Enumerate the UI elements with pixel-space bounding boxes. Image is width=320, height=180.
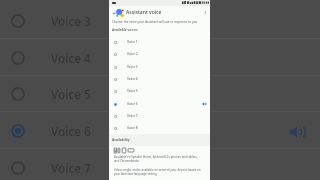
button[interactable]: Voice 7 bbox=[109, 110, 210, 122]
staticText: Voice 4 bbox=[127, 77, 138, 81]
staticText: Voice 1 bbox=[127, 40, 138, 44]
staticText: Voice 2 bbox=[127, 52, 138, 56]
staticText: Voice 6 bbox=[127, 102, 138, 106]
button[interactable]: Voice 7 bbox=[0, 149, 320, 180]
button[interactable]: Voice 8 bbox=[109, 122, 210, 134]
button[interactable]: Voice 4 bbox=[0, 39, 320, 76]
button[interactable]: Voice 5 bbox=[0, 75, 320, 112]
button[interactable]: More options bbox=[203, 10, 208, 15]
button[interactable]: Voice 1 bbox=[109, 36, 210, 48]
staticText: Assistant voice bbox=[126, 9, 162, 16]
button[interactable]: Voice 3 bbox=[0, 2, 320, 39]
staticText: Voice 4 bbox=[51, 50, 91, 66]
button[interactable]: Voice 4 bbox=[109, 73, 210, 85]
button[interactable]: Voice 3 bbox=[109, 61, 210, 73]
staticText: Available on Speaker Home, Android 6.0+ … bbox=[114, 155, 202, 163]
button[interactable]: Back bbox=[112, 11, 116, 15]
staticText: Voice 3 bbox=[127, 65, 138, 69]
staticText: Available voices bbox=[112, 27, 138, 32]
button[interactable]: Voice 5 bbox=[109, 85, 210, 97]
staticText: Choose the voice your Assistant will use… bbox=[112, 20, 198, 24]
button[interactable]: Voice 6 bbox=[109, 98, 210, 110]
button[interactable]: Voice 6 bbox=[0, 112, 320, 149]
staticText: Voice 7 bbox=[51, 160, 91, 176]
staticText: Voice 8 bbox=[127, 126, 138, 130]
staticText: Voice 7 bbox=[127, 114, 138, 118]
other: Play voice sample bbox=[289, 124, 305, 140]
staticText: Voices might not be available on some of… bbox=[114, 168, 202, 176]
staticText: Voice 3 bbox=[51, 13, 91, 29]
staticText: Voice 5 bbox=[51, 86, 91, 102]
staticText: Voice 6 bbox=[51, 123, 91, 139]
button[interactable]: Voice 2 bbox=[109, 48, 210, 60]
staticText: Voice 5 bbox=[127, 89, 138, 93]
staticText: Availability bbox=[112, 137, 130, 142]
